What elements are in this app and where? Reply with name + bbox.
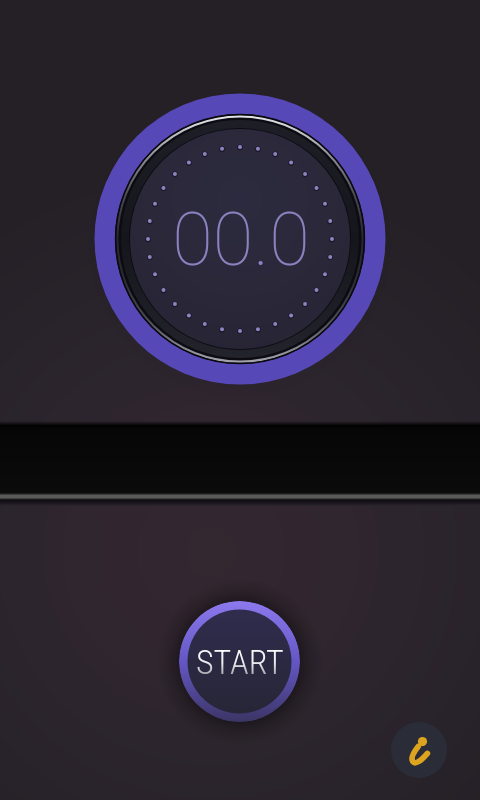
button[interactable]: Info [391,722,447,778]
staticText: 00.0 [172,196,310,283]
button[interactable]: START [179,601,300,722]
staticText: START [196,642,284,682]
